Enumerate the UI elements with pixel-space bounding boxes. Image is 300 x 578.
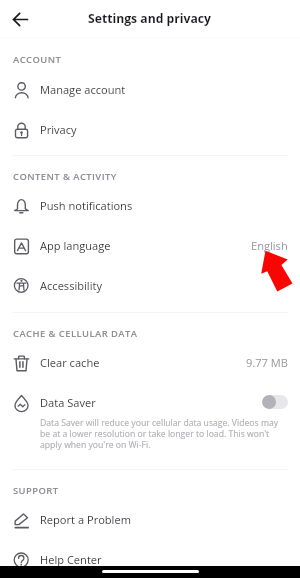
staticText: Settings and privacy [88, 10, 212, 27]
staticText: Privacy [40, 122, 77, 137]
staticText: Report a Problem [40, 512, 131, 527]
staticText: 9.77 MB [246, 355, 288, 370]
staticText: Help Center [40, 552, 102, 567]
button[interactable]: Data Saver [0, 382, 300, 456]
staticText: App language [40, 238, 111, 253]
button[interactable]: Report a Problem [0, 499, 300, 539]
staticText: Manage account [40, 82, 126, 97]
button[interactable]: Privacy [0, 109, 300, 149]
staticText: Push notifications [40, 198, 133, 213]
staticText: Data Saver [40, 395, 96, 410]
button[interactable]: App language [0, 225, 300, 265]
button[interactable]: Back [7, 6, 34, 33]
staticText: ACCOUNT [13, 53, 62, 66]
button[interactable]: Manage account [0, 69, 300, 109]
staticText: Clear cache [40, 355, 100, 370]
button[interactable]: Push notifications [0, 185, 300, 225]
staticText: SUPPORT [13, 484, 59, 497]
staticText: CACHE & CELLULAR DATA [13, 327, 138, 340]
button[interactable]: Clear cache [0, 342, 300, 382]
staticText: Accessibility [40, 278, 102, 293]
staticText: English [251, 238, 288, 253]
button[interactable]: Accessibility [0, 265, 300, 305]
staticText: Data Saver will reduce your cellular dat… [40, 417, 282, 451]
staticText: CONTENT & ACTIVITY [13, 170, 117, 183]
button[interactable]: Help Center [0, 539, 300, 578]
